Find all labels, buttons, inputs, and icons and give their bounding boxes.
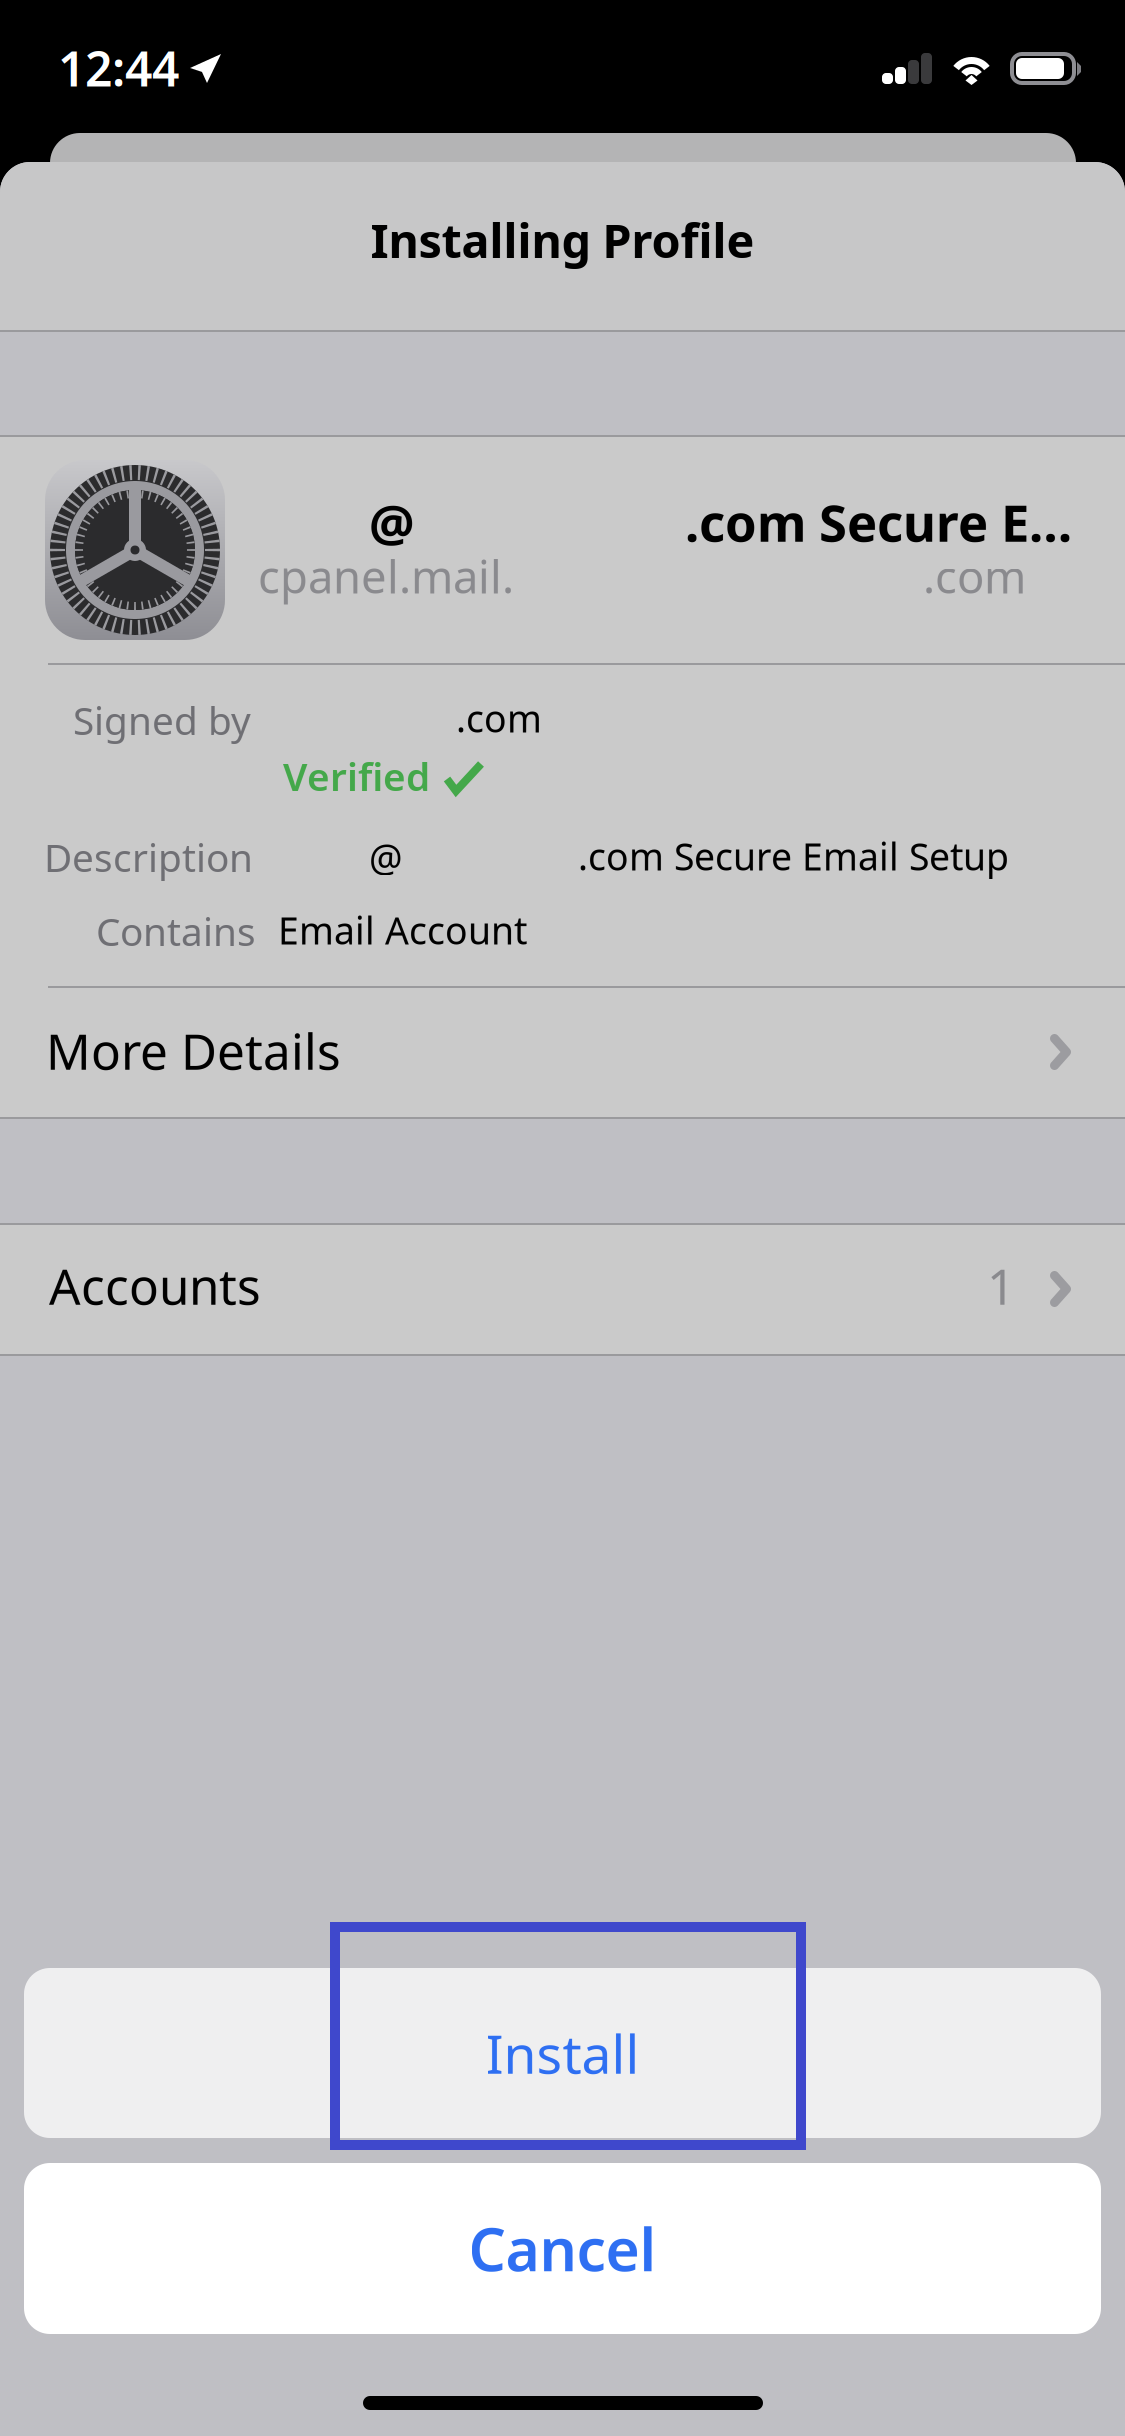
staticText: Install xyxy=(485,2018,639,2088)
staticText: .com Secure Email Setup xyxy=(578,831,1009,881)
staticText: Verified xyxy=(283,750,430,802)
staticText: Description xyxy=(44,831,253,883)
staticText: Accounts xyxy=(49,1253,261,1318)
staticText: .com xyxy=(923,546,1026,606)
staticText: 12:44 xyxy=(58,36,179,100)
staticText: Email Account xyxy=(278,905,527,955)
button[interactable]: Install xyxy=(24,1968,1101,2138)
staticText: More Details xyxy=(46,1018,341,1083)
staticText: .com xyxy=(456,693,542,743)
button[interactable]: Cancel xyxy=(24,2163,1101,2334)
staticText: Signed by xyxy=(73,694,251,746)
staticText: Cancel xyxy=(468,2209,656,2287)
staticText: @ xyxy=(369,832,403,882)
staticText: .com Secure E… xyxy=(685,488,1072,556)
staticText: @ xyxy=(369,488,414,556)
staticText: cpanel.mail. xyxy=(258,546,514,606)
staticText: Installing Profile xyxy=(370,209,754,271)
button[interactable]: Accounts xyxy=(0,1225,1125,1354)
staticText: 1 xyxy=(987,1253,1015,1318)
button[interactable]: More Details xyxy=(0,988,1125,1117)
staticText: Contains xyxy=(96,905,256,957)
